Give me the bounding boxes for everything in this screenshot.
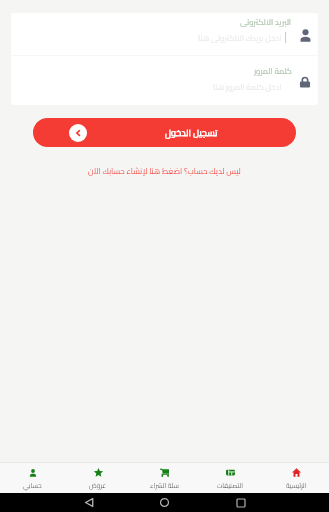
button[interactable]: عروض [65,463,131,493]
staticText: ادخل كلمة المرور هنا [213,80,282,92]
button[interactable]: سلة الشراء [131,463,197,493]
staticText: سلة الشراء [150,480,179,492]
button[interactable]: الرئيسية [263,463,329,493]
button[interactable]: Back [69,493,109,512]
button[interactable]: التصنيفات [197,463,263,493]
staticText: البريد الالكتروني [240,15,292,27]
staticText: ليس لديك حساب؟ اضغط هنا لإنشاء حسابك الآ… [88,164,241,179]
staticText: تسجيل الدخول [165,124,218,141]
staticText: حسابي [23,480,42,492]
button[interactable]: ليس لديك حساب؟ اضغط هنا لإنشاء حسابك الآ… [0,164,329,179]
button[interactable]: Recents [220,493,261,512]
staticText: عروض [89,480,107,492]
staticText: التصنيفات [217,480,244,492]
staticText: الرئيسية [286,480,307,492]
staticText: كلمة المرور [254,64,292,76]
staticText: ادخل بريدك الالكتروني هنا [198,31,282,43]
button[interactable]: حسابي [0,463,65,493]
button[interactable]: تسجيل الدخول [33,118,296,147]
button[interactable]: Home [144,493,185,512]
